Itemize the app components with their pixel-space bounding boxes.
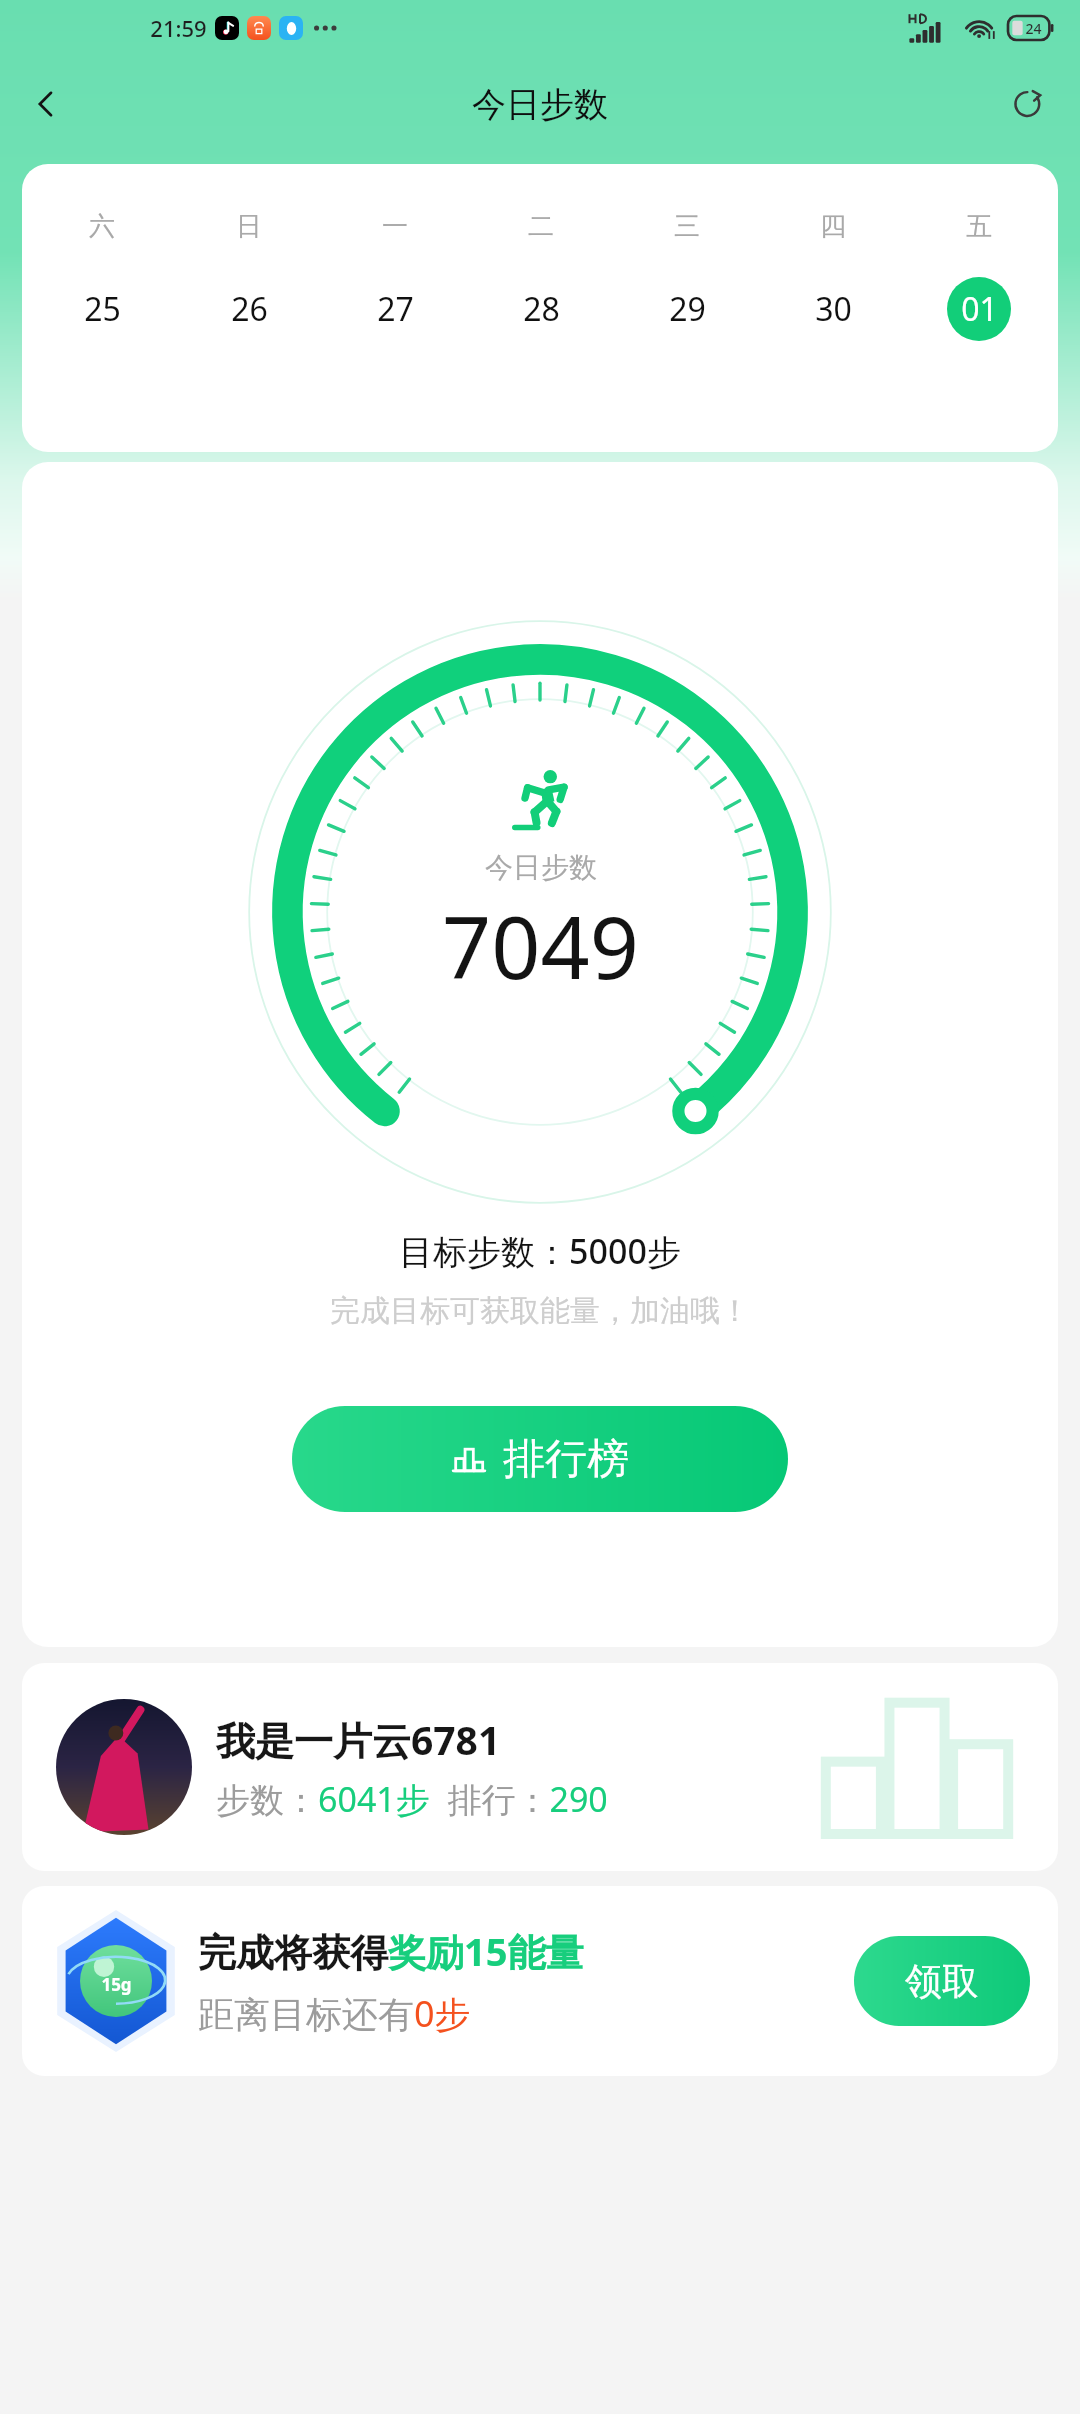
- button[interactable]: 29: [655, 277, 719, 341]
- staticText: 25: [84, 287, 121, 331]
- button[interactable]: Share: [996, 72, 1060, 136]
- button[interactable]: 01: [947, 277, 1011, 341]
- staticText: 步数：6041步 排行：290: [216, 1776, 608, 1822]
- staticText: 27: [377, 287, 414, 331]
- staticText: 四: [820, 210, 846, 243]
- staticText: 01: [961, 287, 998, 331]
- staticText: 六: [89, 210, 115, 243]
- staticText: 30: [815, 287, 852, 331]
- staticText: 领取: [905, 1958, 979, 2005]
- staticText: 排行榜: [503, 1433, 629, 1486]
- staticText: 距离目标还有0步: [198, 1989, 471, 2038]
- staticText: 28: [523, 287, 560, 331]
- staticText: 三: [674, 210, 700, 243]
- staticText: 26: [231, 287, 268, 331]
- button[interactable]: 28: [509, 277, 573, 341]
- button[interactable]: 27: [363, 277, 427, 341]
- staticText: 24: [1025, 19, 1042, 38]
- button[interactable]: 30: [801, 277, 865, 341]
- staticText: 7049: [442, 887, 639, 1004]
- staticText: 日: [236, 210, 262, 243]
- staticText: 15g: [101, 1973, 132, 1996]
- staticText: 完成将获得奖励15能量: [198, 1925, 584, 1977]
- staticText: 一: [382, 210, 408, 243]
- staticText: 今日步数: [485, 850, 597, 885]
- button[interactable]: 26: [217, 277, 281, 341]
- button[interactable]: 我是一片云6781: [22, 1663, 1058, 1871]
- button[interactable]: Back: [14, 72, 78, 136]
- staticText: 21:59: [150, 13, 207, 43]
- staticText: 今日步数: [472, 83, 608, 126]
- staticText: 五: [966, 210, 992, 243]
- button[interactable]: 排行榜: [292, 1406, 788, 1512]
- staticText: 完成目标可获取能量，加油哦！: [330, 1292, 750, 1330]
- button[interactable]: 25: [70, 277, 134, 341]
- staticText: 29: [669, 287, 706, 331]
- staticText: 二: [528, 210, 554, 243]
- button[interactable]: 领取: [854, 1936, 1030, 2026]
- staticText: 目标步数：5000步: [399, 1228, 681, 1274]
- staticText: 我是一片云6781: [216, 1713, 501, 1766]
